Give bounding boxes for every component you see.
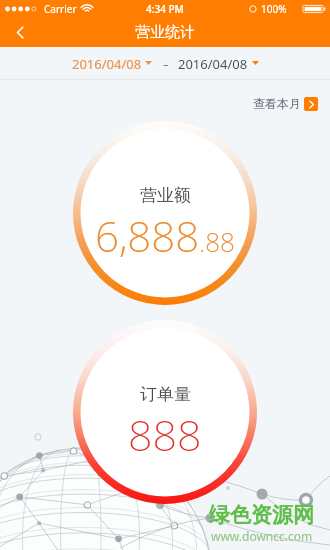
button[interactable]: 订单量 xyxy=(73,320,257,504)
staticText: 营业额 xyxy=(140,185,191,206)
button[interactable]: 营业额 xyxy=(73,121,257,305)
staticText: 888 xyxy=(128,405,202,464)
staticText: 100% xyxy=(261,2,287,16)
staticText: – xyxy=(163,56,169,71)
staticText: 查看本月 xyxy=(253,96,301,111)
staticText: 2016/04/08 xyxy=(178,55,248,71)
button[interactable]: 2016/04/08 xyxy=(178,52,259,74)
staticText: 4:34 PM xyxy=(146,2,184,16)
staticText: Carrier xyxy=(44,2,77,16)
button[interactable]: 查看本月 xyxy=(253,96,318,111)
staticText: 订单量 xyxy=(140,384,191,405)
staticText: www.downcc.com xyxy=(211,528,313,544)
staticText: 营业统计 xyxy=(135,23,195,42)
staticText: 6,888.88 xyxy=(95,207,235,264)
button[interactable]: Back xyxy=(0,18,40,47)
staticText: 绿色资源网 xyxy=(209,502,314,528)
staticText: 2016/04/08 xyxy=(72,55,142,71)
button[interactable]: 2016/04/08 xyxy=(72,52,152,74)
